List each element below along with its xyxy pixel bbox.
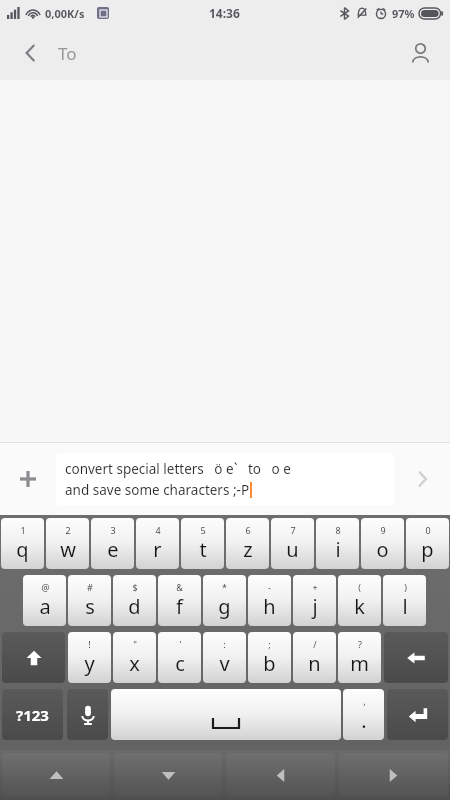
button[interactable]: convert special letters ö e` to o e xyxy=(56,453,394,505)
button[interactable]: Down xyxy=(114,753,222,797)
button[interactable]: Enter xyxy=(387,689,448,740)
button[interactable]: $ xyxy=(113,575,156,626)
staticText: " xyxy=(133,638,137,650)
staticText: , xyxy=(363,695,366,707)
button[interactable]: 1 xyxy=(1,518,44,569)
staticText: q xyxy=(16,536,29,563)
staticText: c xyxy=(175,650,185,677)
button[interactable]: + xyxy=(293,575,336,626)
button[interactable]: Add attachment xyxy=(0,451,56,507)
staticText: ?123 xyxy=(16,705,49,725)
button[interactable]: ( xyxy=(338,575,381,626)
button[interactable]: # xyxy=(68,575,111,626)
button[interactable]: ! xyxy=(68,632,111,683)
staticText: 1 xyxy=(20,524,26,536)
button[interactable]: ? xyxy=(338,632,381,683)
button[interactable]: * xyxy=(203,575,246,626)
button[interactable]: ; xyxy=(248,632,291,683)
button[interactable]: 8 xyxy=(316,518,359,569)
staticText: 2 xyxy=(65,524,71,536)
staticText: y xyxy=(84,650,95,677)
button[interactable]: ' xyxy=(158,632,201,683)
staticText: p xyxy=(421,536,434,563)
button[interactable]: 5 xyxy=(181,518,224,569)
staticText: u xyxy=(286,536,299,563)
button[interactable]: : xyxy=(203,632,246,683)
staticText: s xyxy=(85,593,95,620)
staticText: 14:36 xyxy=(209,5,240,21)
staticText: o xyxy=(376,536,389,563)
button[interactable]: ?123 xyxy=(2,689,63,740)
staticText: j xyxy=(312,593,318,620)
staticText: v xyxy=(219,650,230,677)
staticText: ! xyxy=(88,638,91,650)
staticText: : xyxy=(223,638,226,650)
staticText: f xyxy=(176,593,183,620)
button[interactable]: 9 xyxy=(361,518,404,569)
staticText: 97% xyxy=(392,6,415,21)
staticText: w xyxy=(60,536,76,563)
button[interactable]: 2 xyxy=(46,518,89,569)
staticText: convert special letters ö e` to o e xyxy=(65,460,291,478)
staticText: ' xyxy=(179,638,182,650)
button[interactable]: Backspace xyxy=(384,632,448,683)
staticText: - xyxy=(268,581,271,593)
staticText: 7 xyxy=(290,524,296,536)
staticText: a xyxy=(39,593,51,620)
button[interactable]: Up xyxy=(2,753,110,797)
staticText: r xyxy=(153,536,162,563)
button[interactable]: / xyxy=(293,632,336,683)
staticText: x xyxy=(129,650,140,677)
button[interactable]: Space xyxy=(111,689,341,740)
staticText: # xyxy=(87,581,93,593)
staticText: ) xyxy=(404,581,407,593)
button[interactable]: Right xyxy=(339,753,448,797)
staticText: 6 xyxy=(245,524,251,536)
staticText: g xyxy=(218,593,231,620)
staticText: 5 xyxy=(200,524,206,536)
button[interactable]: 4 xyxy=(136,518,179,569)
button[interactable]: - xyxy=(248,575,291,626)
staticText: ? xyxy=(358,638,362,650)
button[interactable]: Shift xyxy=(2,632,65,683)
staticText: t xyxy=(199,536,207,563)
staticText: n xyxy=(308,650,321,677)
button[interactable]: 0 xyxy=(406,518,449,569)
button[interactable]: 7 xyxy=(271,518,314,569)
staticText: 4 xyxy=(155,524,161,536)
staticText: z xyxy=(243,536,253,563)
staticText: & xyxy=(176,581,183,593)
button[interactable]: Left xyxy=(226,753,335,797)
staticText: $ xyxy=(132,581,138,593)
button[interactable]: Send xyxy=(394,451,450,507)
staticText: . xyxy=(361,707,367,734)
staticText: k xyxy=(354,593,365,620)
staticText: and save some characters ;-P xyxy=(65,481,250,499)
staticText: @ xyxy=(41,581,50,593)
staticText: 8 xyxy=(335,524,341,536)
button[interactable]: , xyxy=(343,689,384,740)
button[interactable]: 3 xyxy=(91,518,134,569)
staticText: 0 xyxy=(425,524,431,536)
staticText: 9 xyxy=(380,524,386,536)
button[interactable]: & xyxy=(158,575,201,626)
button[interactable]: @ xyxy=(23,575,66,626)
staticText: l xyxy=(402,593,408,620)
staticText: d xyxy=(128,593,141,620)
staticText: 3 xyxy=(110,524,116,536)
staticText: b xyxy=(263,650,276,677)
button[interactable]: " xyxy=(113,632,156,683)
staticText: * xyxy=(222,581,227,593)
staticText: h xyxy=(263,593,276,620)
staticText: To xyxy=(58,42,77,65)
staticText: / xyxy=(313,638,317,650)
button[interactable]: Back xyxy=(8,31,52,75)
staticText: ; xyxy=(268,638,271,650)
button[interactable]: Contacts xyxy=(398,31,442,75)
staticText: i xyxy=(335,536,341,563)
button[interactable]: 6 xyxy=(226,518,269,569)
staticText: ( xyxy=(358,581,361,593)
button[interactable]: Voice input xyxy=(67,689,108,740)
button[interactable]: ) xyxy=(383,575,426,626)
staticText: 0,00K/s xyxy=(45,6,85,21)
